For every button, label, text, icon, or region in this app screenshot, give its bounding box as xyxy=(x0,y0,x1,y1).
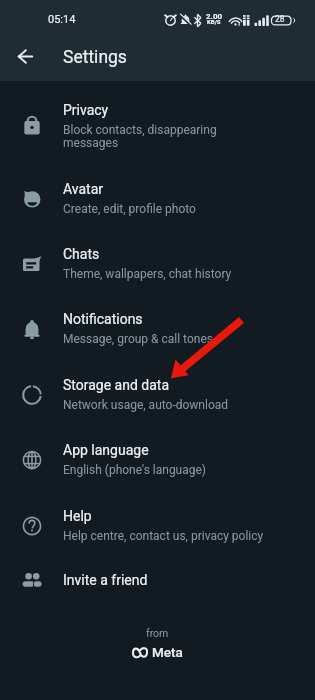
staticText: Help xyxy=(63,508,92,524)
button[interactable]: Privacy xyxy=(0,86,315,166)
staticText: 2.00 xyxy=(206,12,223,21)
staticText: Message, group & call tones xyxy=(63,332,213,346)
staticText: Storage and data xyxy=(63,377,170,393)
staticText: Create, edit, profile photo xyxy=(63,202,196,216)
staticText: Privacy xyxy=(63,102,109,118)
staticText: Meta xyxy=(152,644,183,660)
staticText: Chats xyxy=(63,246,100,262)
button[interactable]: Back xyxy=(12,43,39,70)
staticText: 05:14 xyxy=(48,13,76,26)
staticText: Invite a friend xyxy=(63,572,148,588)
staticText: Help centre, contact us, privacy policy xyxy=(63,529,264,543)
staticText: Block contacts, disappearing messages xyxy=(63,123,272,150)
staticText: Network usage, auto-download xyxy=(63,398,229,412)
staticText: Theme, wallpapers, chat history xyxy=(63,267,232,281)
button[interactable]: Invite a friend xyxy=(0,555,315,604)
staticText: English (phone's language) xyxy=(63,463,207,477)
button[interactable]: Help xyxy=(0,493,315,558)
staticText: Avatar xyxy=(63,181,104,197)
staticText: App language xyxy=(63,442,149,458)
button[interactable]: Notifications xyxy=(0,296,315,361)
staticText: KB/S xyxy=(207,18,221,25)
button[interactable]: Chats xyxy=(0,231,315,296)
staticText: Notifications xyxy=(63,311,143,327)
button[interactable]: App language xyxy=(0,427,315,492)
staticText: Settings xyxy=(63,47,127,68)
button[interactable]: Storage and data xyxy=(0,362,315,427)
staticText: 28 xyxy=(275,14,285,24)
staticText: from xyxy=(146,627,169,639)
button[interactable]: Avatar xyxy=(0,166,315,231)
